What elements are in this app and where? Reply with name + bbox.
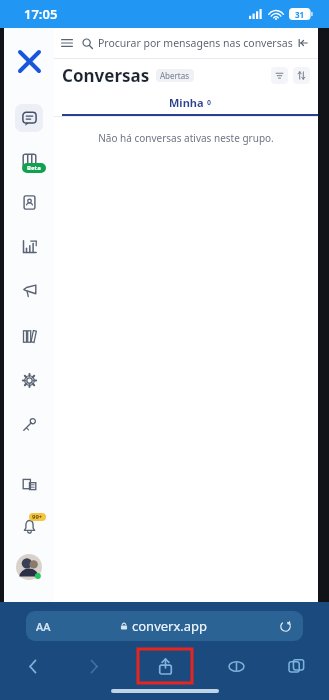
button[interactable]: Configuracoes xyxy=(15,366,43,394)
button[interactable]: Logo xyxy=(12,44,46,78)
button[interactable]: Apps xyxy=(15,470,43,498)
button[interactable]: Favoritos xyxy=(221,651,251,681)
staticText: AA xyxy=(36,619,51,634)
button[interactable]: Abertas xyxy=(156,69,194,82)
staticText: Procurar por mensagens nas conversas xyxy=(98,36,293,50)
button[interactable]: Contatos xyxy=(15,188,43,216)
button[interactable]: Desempenho xyxy=(15,232,43,260)
button[interactable]: Perfil xyxy=(14,552,44,582)
button[interactable]: Compartilhar xyxy=(138,649,192,683)
button[interactable]: Conversas xyxy=(62,64,150,87)
button[interactable]: Recolher painel xyxy=(295,35,311,51)
button[interactable]: Automacoes xyxy=(15,410,43,438)
staticText: Não há conversas ativas neste grupo. xyxy=(54,131,318,145)
button[interactable]: Menu xyxy=(54,28,318,58)
staticText: Abertas xyxy=(160,70,190,81)
button[interactable]: Avançar xyxy=(78,651,108,681)
button[interactable]: Ordenar xyxy=(293,67,310,84)
staticText: Minha xyxy=(169,95,204,110)
staticText: 31 xyxy=(295,9,305,20)
staticText: 17:05 xyxy=(24,5,58,23)
staticText: 99+ xyxy=(32,513,43,521)
button[interactable]: Minha xyxy=(62,91,318,116)
staticText: Beta xyxy=(27,164,41,172)
button[interactable]: Biblioteca xyxy=(15,322,43,350)
button[interactable]: Voltar xyxy=(18,651,48,681)
staticText: 0 xyxy=(207,98,212,108)
button[interactable]: Notificacoes xyxy=(15,512,43,540)
button[interactable]: Abas xyxy=(281,651,311,681)
staticText: converx.app xyxy=(132,617,208,635)
button[interactable]: Relatorios Beta xyxy=(15,146,43,174)
other: Menu xyxy=(61,37,73,49)
button[interactable]: Filtrar xyxy=(271,67,288,84)
button[interactable]: AA xyxy=(26,611,303,641)
button[interactable]: Conversas xyxy=(15,104,43,132)
button[interactable]: Campanhas xyxy=(15,276,43,304)
button[interactable]: Recarregar xyxy=(277,618,293,634)
